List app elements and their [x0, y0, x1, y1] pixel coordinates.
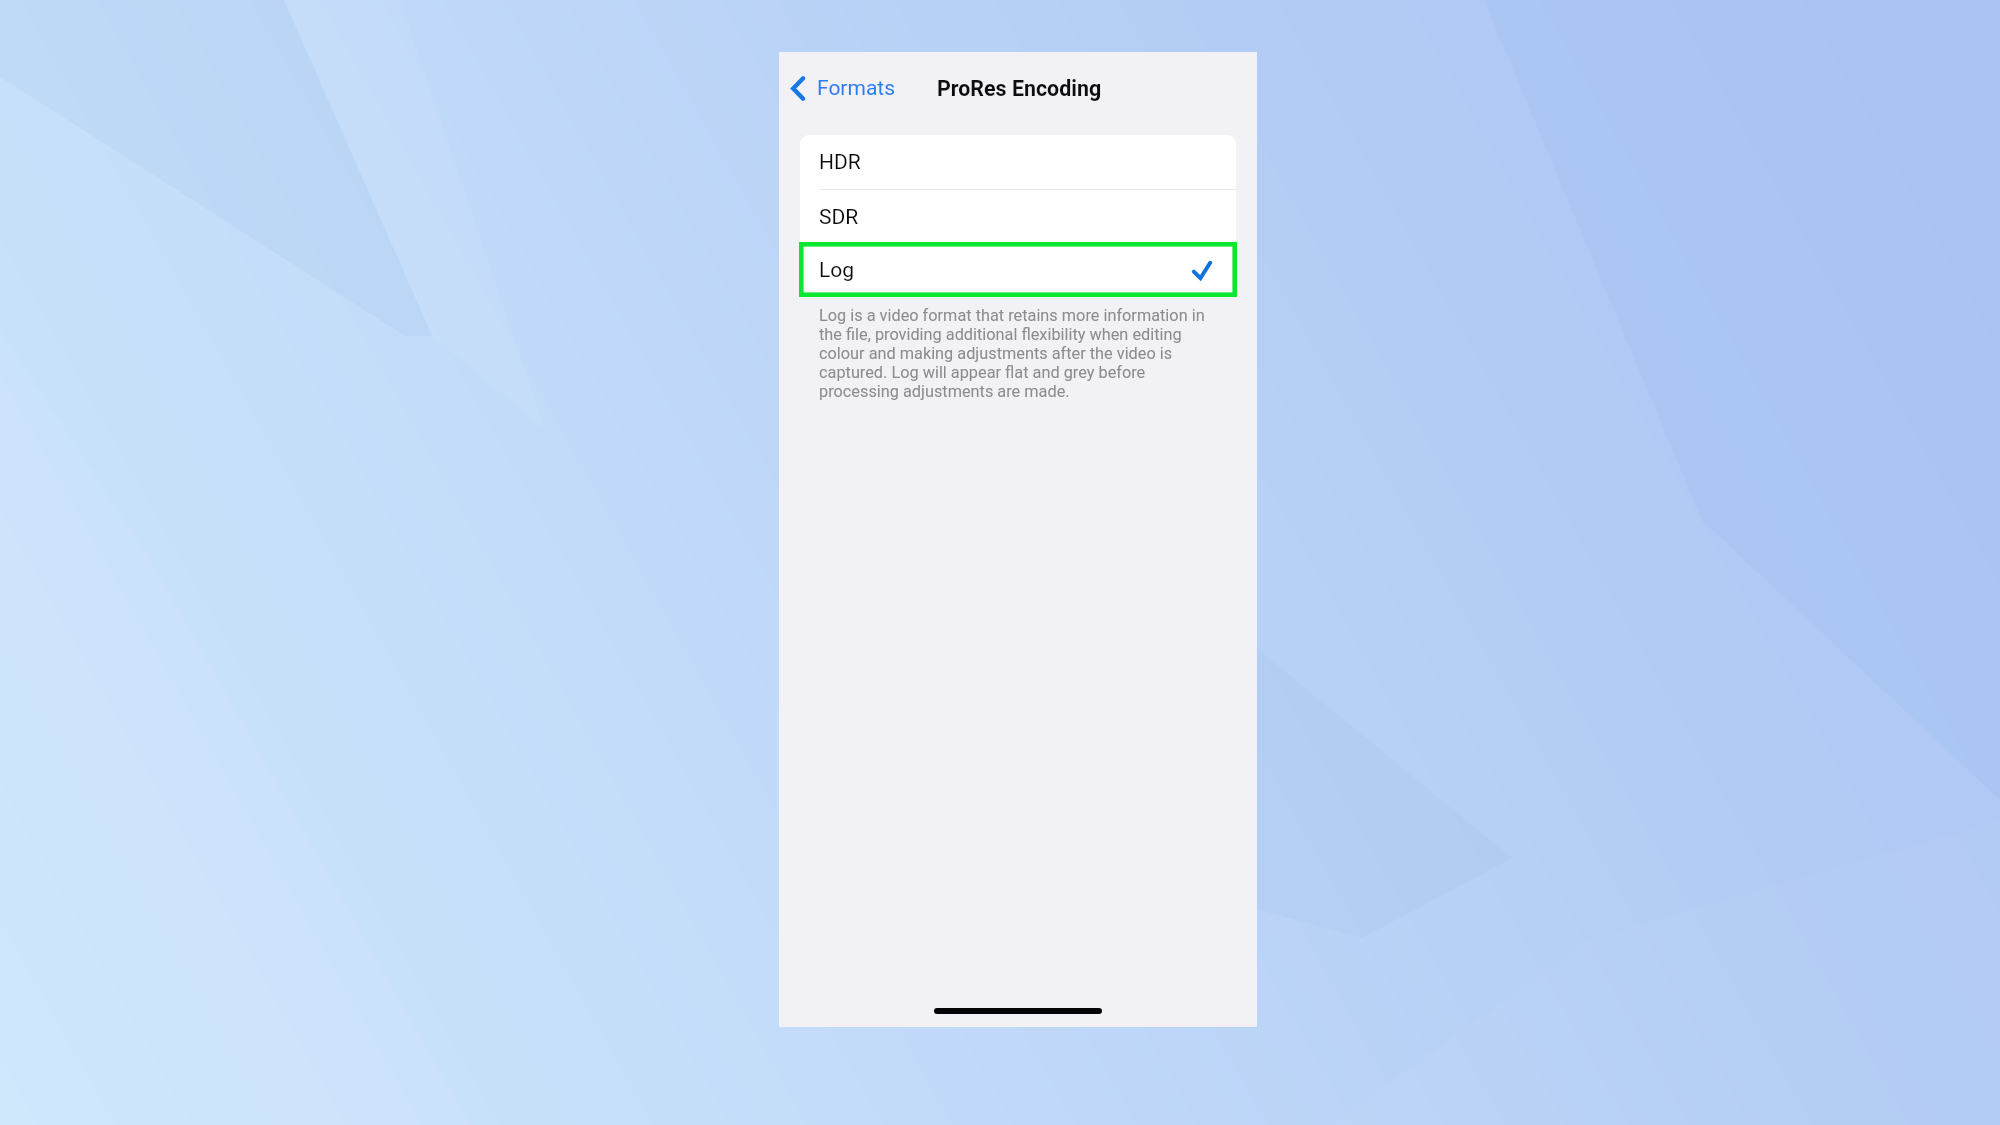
button[interactable]: Back to Formats [786, 70, 900, 106]
button[interactable]: SDR [800, 190, 1236, 244]
staticText: Log [819, 258, 855, 283]
staticText: Formats [817, 76, 896, 101]
staticText: ProRes Encoding [937, 76, 1102, 101]
staticText: HDR [819, 150, 861, 175]
staticText: Log is a video format that retains more … [819, 306, 1215, 401]
button[interactable]: HDR [800, 135, 1236, 189]
staticText: SDR [819, 205, 859, 230]
button[interactable]: Log [800, 245, 1236, 296]
